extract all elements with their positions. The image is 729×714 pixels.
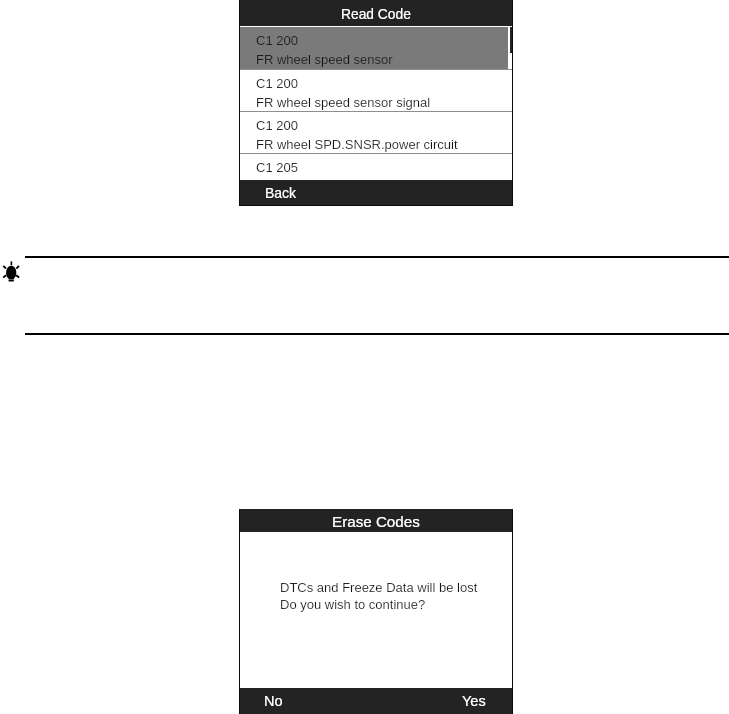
button[interactable]: C1 200 xyxy=(240,27,512,69)
staticText: Do you wish to continue? xyxy=(280,597,426,612)
staticText: C1 205 xyxy=(256,160,298,175)
staticText: No xyxy=(264,693,283,709)
button[interactable]: C1 205 xyxy=(240,154,512,180)
staticText: DTCs and Freeze Data will be lost xyxy=(280,580,478,595)
staticText: Read Code xyxy=(341,7,411,22)
staticText: C1 200 xyxy=(256,118,298,133)
button[interactable]: C1 200 xyxy=(240,112,512,153)
staticText: Erase Codes xyxy=(332,513,420,530)
button[interactable]: Back xyxy=(240,180,512,205)
staticText: FR wheel SPD.SNSR.power circuit xyxy=(256,137,458,152)
button[interactable]: C1 200 xyxy=(240,70,512,111)
staticText: FR wheel speed sensor xyxy=(256,52,393,67)
staticText: FR wheel speed sensor signal xyxy=(256,95,431,110)
other: Tip xyxy=(2,261,20,282)
button[interactable]: Yes xyxy=(376,688,512,714)
staticText: C1 200 xyxy=(256,33,298,48)
staticText: C1 200 xyxy=(256,76,298,91)
button[interactable]: No xyxy=(240,688,376,714)
staticText: Back xyxy=(265,185,297,201)
staticText: Yes xyxy=(462,693,486,709)
